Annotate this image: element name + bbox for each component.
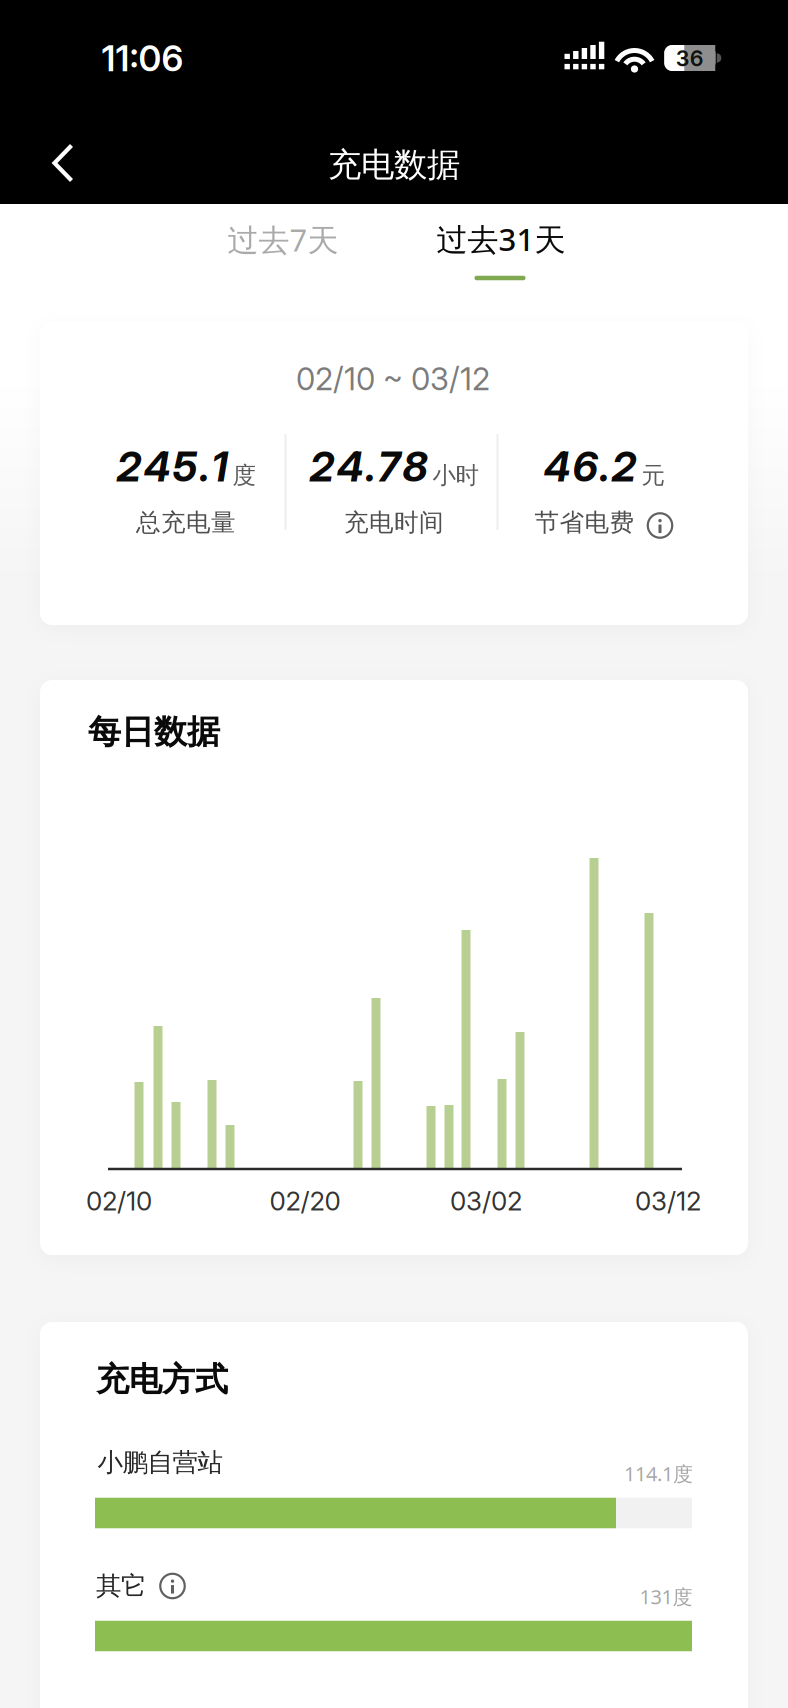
button[interactable] (646, 512, 673, 539)
staticText: 02/10 ~ 03/12 (296, 360, 490, 398)
staticText: 2 4 5 . 1 (116, 442, 227, 491)
staticText: 131度 (639, 1583, 692, 1610)
button[interactable] (159, 1572, 186, 1599)
staticText: 4 6 . 2 (543, 442, 636, 491)
staticText: 过去7天 (227, 218, 338, 261)
staticText: 充电时间 (344, 507, 444, 538)
staticText: 总充电量 (136, 507, 236, 538)
staticText: 11:06 (101, 37, 183, 80)
staticText: 度 (232, 461, 255, 490)
staticText: 02/10 (86, 1185, 152, 1217)
staticText: 其它 (96, 1570, 146, 1602)
staticText: 03/02 (450, 1185, 522, 1217)
staticText: 节省电费 (534, 507, 634, 538)
staticText: 充电数据 (328, 144, 460, 186)
staticText: 36 (676, 45, 704, 71)
button[interactable]: 过去31天 (391, 204, 611, 274)
staticText: 02/20 (269, 1185, 340, 1217)
staticText: 充电方式 (96, 1359, 228, 1400)
staticText: 2 4 . 7 8 (309, 442, 427, 491)
staticText: 114.1度 (624, 1460, 693, 1487)
button[interactable] (33, 131, 97, 195)
staticText: 过去31天 (436, 218, 565, 260)
staticText: 每日数据 (88, 711, 220, 753)
staticText: 小鹏自营站 (97, 1446, 222, 1479)
button[interactable]: 过去7天 (173, 204, 393, 274)
staticText: 元 (641, 461, 664, 490)
staticText: 03/12 (635, 1185, 701, 1217)
staticText: 小时 (432, 461, 478, 490)
